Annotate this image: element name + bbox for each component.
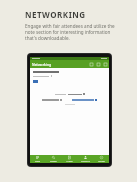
staticText: Contacts <box>81 160 90 163</box>
staticText: NETWORKING <box>25 9 86 20</box>
staticText: Profile <box>98 160 105 163</box>
button[interactable]: Feed <box>30 155 45 163</box>
button[interactable]: Search <box>45 155 61 163</box>
button[interactable]: Search <box>89 62 93 66</box>
staticText: Networking <box>32 62 52 67</box>
staticText: Engage with fair attendees and utilize t… <box>25 23 115 41</box>
button[interactable]: Contacts <box>77 155 93 163</box>
staticText: Search <box>50 160 57 163</box>
button[interactable]: Filter <box>96 62 100 66</box>
button[interactable]: Profile <box>93 155 109 163</box>
button[interactable]: More options <box>103 62 107 66</box>
staticText: Notes <box>66 160 73 163</box>
staticText: Feed <box>35 160 40 163</box>
button[interactable]: Notes <box>61 155 77 163</box>
